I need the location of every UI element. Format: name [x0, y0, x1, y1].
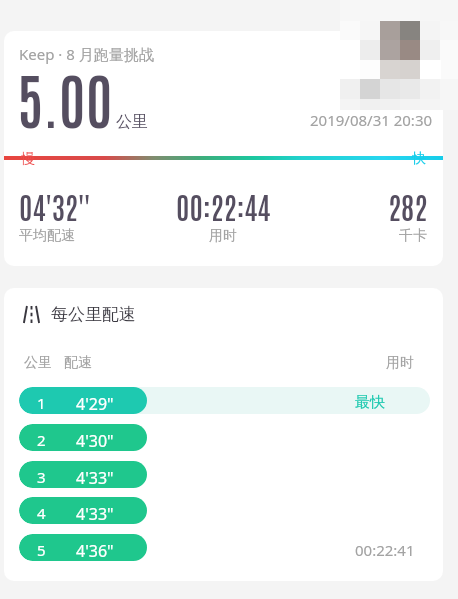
staticText: 4'36" — [76, 540, 114, 561]
staticText: 最快 — [355, 393, 385, 412]
staticText: 3 — [37, 467, 46, 487]
staticText: 00:22:41 — [355, 540, 415, 560]
staticText: 用时 — [386, 354, 414, 372]
staticText: 公里 — [24, 354, 52, 372]
staticText: 每公里配速 — [51, 304, 136, 325]
staticText: 4'30" — [76, 430, 114, 451]
button[interactable]: 2 — [19, 424, 430, 451]
staticText: 4'29" — [76, 393, 114, 414]
staticText: 5 — [37, 540, 46, 560]
staticText: 用时 — [209, 227, 237, 245]
staticText: 公里 — [116, 112, 148, 132]
other: Road — [22, 306, 41, 323]
staticText: 慢 — [21, 150, 35, 168]
button[interactable]: 4 — [19, 497, 430, 524]
button[interactable]: 3 — [19, 461, 430, 488]
staticText: 5.00 — [17, 59, 113, 137]
button[interactable]: 5 — [19, 534, 430, 561]
staticText: 4 — [37, 503, 46, 523]
staticText: 配速 — [64, 354, 92, 372]
staticText: 2 — [37, 430, 46, 450]
button[interactable]: 1 — [19, 387, 430, 414]
staticText: 快 — [412, 150, 426, 168]
staticText: 4'33" — [76, 467, 114, 488]
staticText: 千卡 — [399, 227, 427, 245]
staticText: 平均配速 — [19, 227, 75, 245]
staticText: 282 — [388, 186, 428, 225]
staticText: Keep · 8 月跑量挑战 — [19, 44, 154, 64]
staticText: 2019/08/31 20:30 — [310, 110, 433, 130]
staticText: 4'33" — [76, 503, 114, 524]
staticText: 00:22:44 — [176, 186, 271, 225]
staticText: 1 — [37, 393, 46, 413]
staticText: 04'32'' — [19, 186, 91, 225]
